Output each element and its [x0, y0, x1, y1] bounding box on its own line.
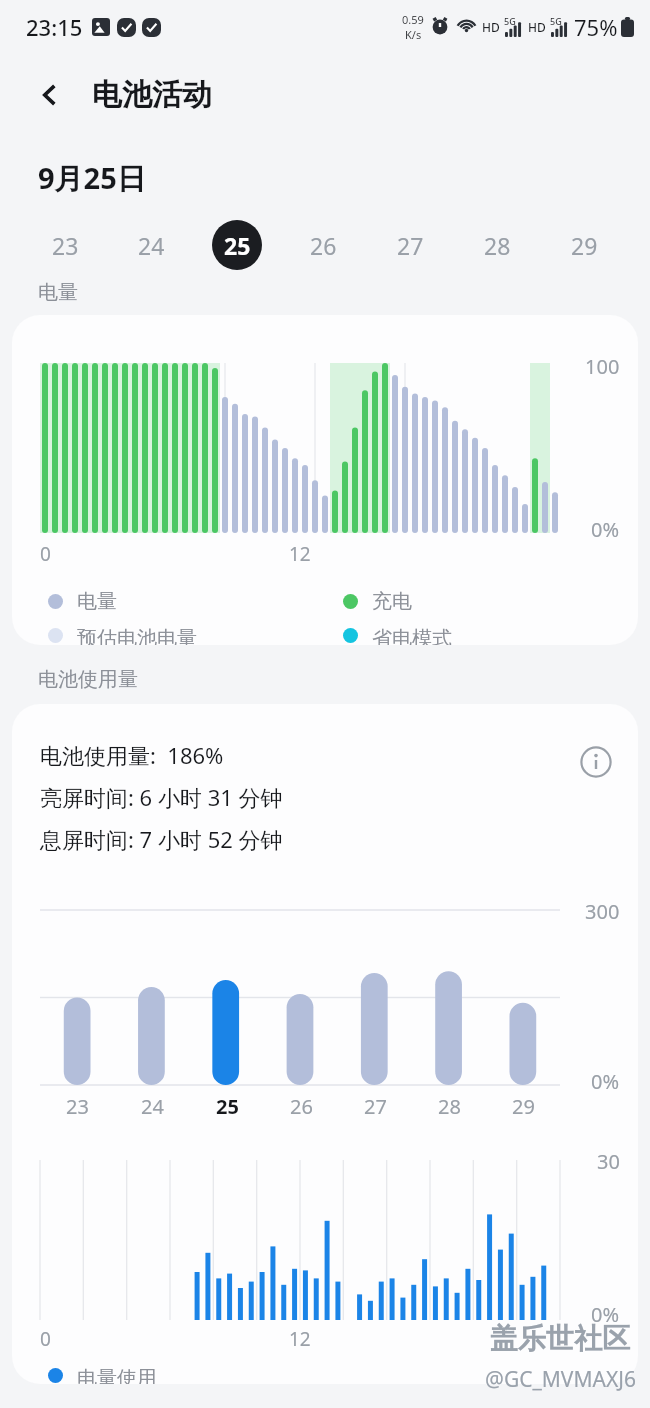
staticText: 24	[138, 230, 165, 261]
staticText: 26	[290, 1093, 313, 1120]
staticText: 0	[40, 541, 51, 567]
button[interactable]: Back	[26, 71, 74, 119]
staticText: 省电模式	[372, 626, 452, 645]
staticText: 0%	[591, 1301, 620, 1328]
staticText: 电池使用量	[38, 667, 138, 692]
button[interactable]: Information	[574, 740, 618, 784]
staticText: 26	[310, 230, 337, 261]
staticText: 电池使用量: 186%	[40, 740, 224, 770]
staticText: 0	[40, 1326, 51, 1352]
staticText: 0%	[591, 1068, 620, 1095]
staticText: 300	[585, 898, 620, 925]
button[interactable]: 25	[194, 216, 280, 274]
staticText: 28	[484, 230, 511, 261]
staticText: 23	[66, 1093, 89, 1120]
button[interactable]: 27	[367, 216, 454, 274]
staticText: 盖乐世社区	[490, 1321, 630, 1356]
staticText: K/s	[405, 27, 422, 42]
staticText: 预估电池电量	[77, 626, 197, 645]
staticText: 亮屏时间: 6 小时 31 分钟	[40, 782, 283, 812]
staticText: 28	[438, 1093, 461, 1120]
staticText: 电量	[38, 280, 78, 305]
staticText: 电量使用	[77, 1366, 157, 1384]
staticText: 25	[216, 1093, 239, 1120]
staticText: 电量	[77, 589, 117, 614]
staticText: 12	[289, 1326, 311, 1352]
button[interactable]: 24	[108, 216, 194, 274]
staticText: 27	[364, 1093, 387, 1120]
staticText: 29	[571, 230, 598, 261]
staticText: 12	[289, 541, 311, 567]
button[interactable]: 100	[12, 315, 638, 645]
staticText: 75%	[574, 12, 618, 42]
button[interactable]: 28	[454, 216, 541, 274]
staticText: 充电	[372, 589, 412, 614]
staticText: 23:15	[26, 12, 83, 42]
staticText: 25	[224, 230, 251, 261]
staticText: 29	[512, 1093, 535, 1120]
staticText: 24	[141, 1093, 164, 1120]
staticText: 0.59	[402, 12, 424, 27]
staticText: 电池活动	[92, 76, 212, 114]
button[interactable]: 29	[541, 216, 628, 274]
staticText: HD	[528, 19, 546, 35]
staticText: 30	[597, 1148, 620, 1175]
staticText: 息屏时间: 7 小时 52 分钟	[40, 824, 283, 854]
staticText: 9月25日	[38, 158, 146, 198]
staticText: HD	[482, 19, 500, 35]
button[interactable]: 23	[22, 216, 108, 274]
staticText: 23	[52, 230, 79, 261]
staticText: @GC_MVMAXJ6	[485, 1365, 636, 1394]
staticText: 100	[585, 353, 620, 380]
staticText: 5G	[504, 15, 516, 27]
staticText: 5G	[550, 15, 562, 27]
button[interactable]: 26	[280, 216, 367, 274]
staticText: 0%	[591, 516, 620, 543]
staticText: 27	[397, 230, 424, 261]
